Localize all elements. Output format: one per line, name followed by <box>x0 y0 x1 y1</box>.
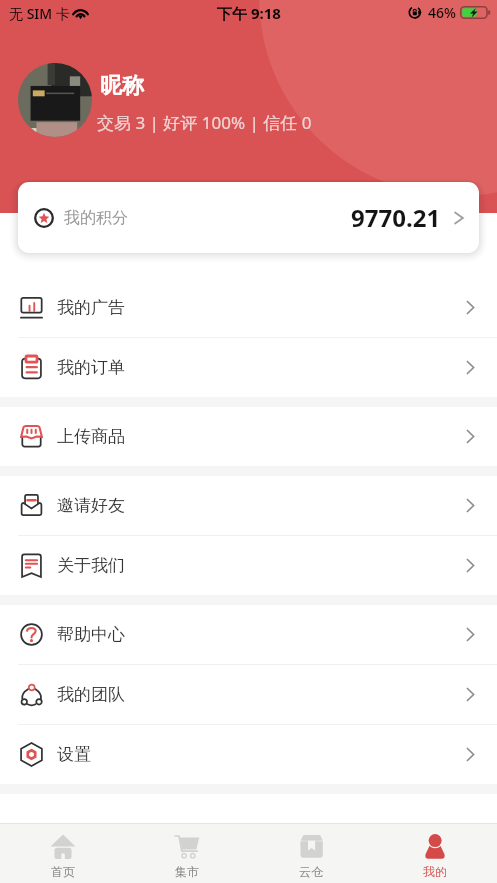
staticText: 46% <box>428 3 456 22</box>
staticText: 关于我们 <box>57 555 125 576</box>
staticText: 我的 <box>423 864 447 879</box>
button[interactable]: 我的订单 <box>0 338 497 397</box>
staticText: 我的广告 <box>57 297 125 318</box>
button[interactable]: 上传商品 <box>0 407 497 466</box>
staticText: 我的订单 <box>57 357 125 378</box>
staticText: 9770.21 <box>351 201 441 234</box>
staticText: 帮助中心 <box>57 624 125 645</box>
button[interactable]: 设置 <box>0 725 497 784</box>
staticText: 无 SIM 卡 <box>9 4 70 23</box>
staticText: 我的积分 <box>64 208 128 228</box>
staticText: 设置 <box>57 744 91 765</box>
staticText: 云仓 <box>299 864 323 879</box>
button[interactable]: 我的积分 <box>18 182 479 253</box>
staticText: 下午 9:18 <box>217 3 281 23</box>
button[interactable]: 我的 <box>373 824 497 883</box>
button[interactable]: 帮助中心 <box>0 605 497 664</box>
staticText: 我的团队 <box>57 684 125 705</box>
button[interactable]: 关于我们 <box>0 536 497 595</box>
staticText: 集市 <box>175 864 199 879</box>
button[interactable]: 我的团队 <box>0 665 497 724</box>
button[interactable]: 我的广告 <box>0 278 497 337</box>
staticText: 上传商品 <box>57 426 125 447</box>
button[interactable]: 邀请好友 <box>0 476 497 535</box>
staticText: 交易 3 | 好评 100% | 信任 0 <box>97 111 312 134</box>
staticText: 昵称 <box>100 72 144 100</box>
staticText: 首页 <box>51 864 75 879</box>
button[interactable]: 集市 <box>125 824 249 883</box>
staticText: 邀请好友 <box>57 495 125 516</box>
button[interactable]: 首页 <box>0 824 125 883</box>
button[interactable]: 云仓 <box>249 824 373 883</box>
